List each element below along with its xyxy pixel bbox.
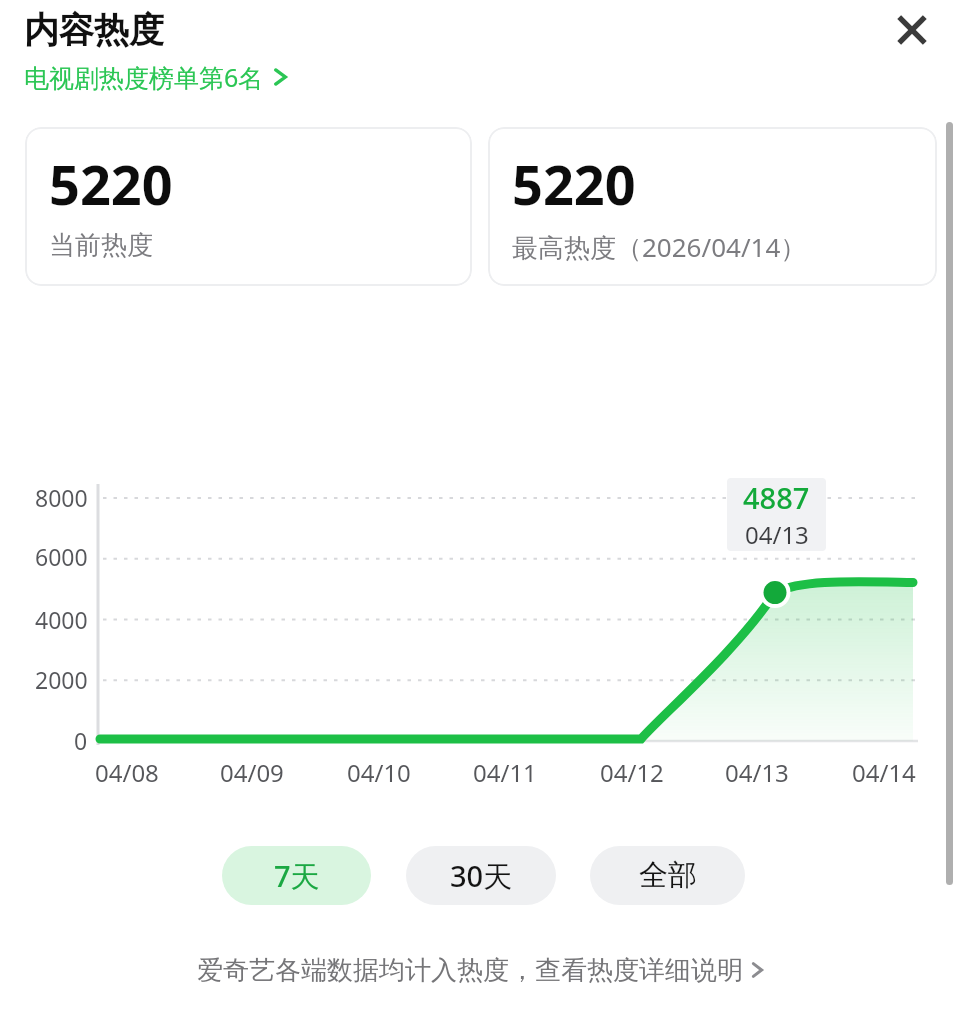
staticText: 5220	[49, 147, 173, 221]
staticText: 爱奇艺各端数据均计入热度，查看热度详细说明	[197, 954, 743, 987]
staticText: 30天	[450, 856, 513, 896]
staticText: 04/09	[220, 756, 284, 789]
button[interactable]: 7天	[222, 846, 371, 905]
staticText: 04/14	[852, 756, 916, 789]
staticText: 04/13	[725, 756, 789, 789]
staticText: 0	[74, 725, 88, 756]
staticText: 04/11	[473, 756, 537, 789]
staticText: 电视剧热度榜单第6名	[24, 60, 264, 94]
staticText: 5220	[512, 147, 636, 221]
button[interactable]: 5220	[488, 127, 937, 286]
staticText: 2000	[35, 664, 88, 695]
button[interactable]: 爱奇艺各端数据均计入热度，查看热度详细说明	[0, 948, 960, 992]
staticText: 6000	[35, 541, 88, 572]
staticText: 04/12	[600, 756, 664, 789]
staticText: 7天	[274, 856, 320, 896]
button[interactable]: 全部	[590, 846, 745, 905]
staticText: 最高热度（2026/04/14）	[512, 229, 807, 265]
staticText: 8000	[35, 482, 88, 513]
staticText: 04/10	[347, 756, 411, 789]
staticText: 4000	[35, 604, 88, 635]
button[interactable]: 电视剧热度榜单第6名	[24, 60, 288, 94]
button[interactable]: 30天	[406, 846, 556, 905]
button[interactable]: Close	[884, 2, 940, 58]
staticText: 04/08	[95, 756, 159, 789]
staticText: 内容热度	[24, 8, 164, 52]
staticText: 04/13	[745, 518, 809, 551]
staticText: 4887	[743, 478, 810, 517]
button[interactable]: 5220	[25, 127, 472, 286]
staticText: 当前热度	[49, 229, 153, 262]
staticText: 全部	[639, 857, 697, 894]
